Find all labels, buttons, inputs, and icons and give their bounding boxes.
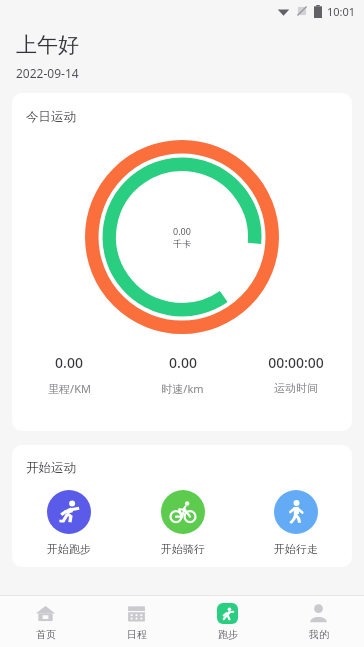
staticText: 首页: [36, 628, 56, 641]
staticText: 开始跑步: [47, 542, 91, 556]
button[interactable]: 今日运动: [12, 93, 352, 431]
staticText: 里程/KM: [48, 381, 91, 396]
button[interactable]: 开始行走: [239, 490, 352, 556]
staticText: 千卡: [173, 238, 191, 249]
staticText: 0.00: [55, 353, 83, 372]
staticText: 日程: [127, 628, 147, 641]
staticText: 开始行走: [274, 542, 318, 556]
staticText: 跑步: [218, 628, 238, 641]
button[interactable]: 日程: [91, 596, 182, 647]
staticText: 0.00: [169, 353, 197, 372]
staticText: 2022-09-14: [16, 65, 79, 81]
staticText: 00:00:00: [268, 353, 324, 372]
button[interactable]: 跑步: [182, 596, 273, 647]
staticText: 时速/km: [161, 381, 204, 396]
staticText: 0.00: [173, 225, 191, 237]
button[interactable]: 开始骑行: [126, 490, 239, 556]
button[interactable]: 首页: [0, 596, 91, 647]
staticText: 10:01: [327, 4, 356, 19]
staticText: 开始骑行: [161, 542, 205, 556]
staticText: 今日运动: [26, 109, 76, 125]
staticText: 开始运动: [26, 460, 76, 476]
staticText: 运动时间: [274, 381, 318, 395]
button[interactable]: 开始跑步: [12, 490, 126, 556]
button[interactable]: 我的: [273, 596, 364, 647]
staticText: 上午好: [16, 32, 79, 58]
staticText: 我的: [309, 628, 329, 641]
